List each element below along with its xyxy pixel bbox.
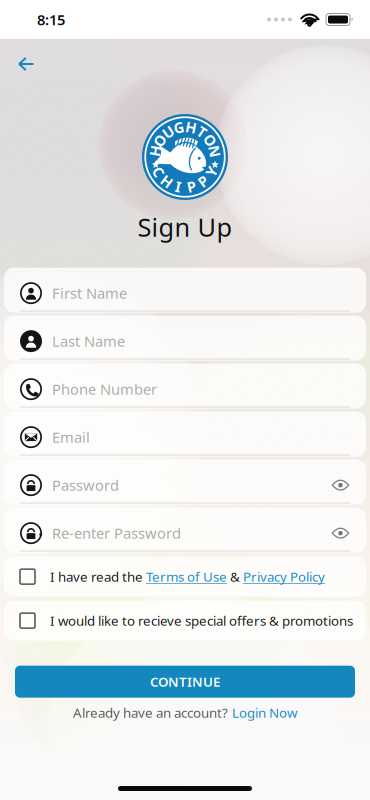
staticText: O [154, 130, 166, 150]
staticText: C [154, 162, 163, 181]
staticText: Password [52, 475, 119, 495]
staticText: G [174, 118, 185, 137]
staticText: P [199, 172, 208, 191]
staticText: Login Now [232, 704, 297, 721]
staticText: Phone Number [52, 379, 157, 399]
staticText: Re-enter Password [52, 523, 181, 543]
staticText: I have read the [50, 568, 146, 585]
staticText: Y [207, 162, 216, 181]
staticText: First Name [52, 283, 127, 303]
staticText: H [150, 141, 161, 161]
button[interactable]: I have read the [4, 557, 366, 597]
button[interactable]: I would like to recieve special offers &… [4, 601, 366, 641]
staticText: U [163, 122, 174, 142]
staticText: H [161, 172, 172, 191]
staticText: CONTINUE [150, 673, 220, 690]
staticText: Last Name [52, 331, 125, 351]
staticText: I would like to recieve special offers &… [50, 612, 353, 629]
staticText: H [185, 118, 196, 137]
button[interactable]: Back [7, 43, 45, 85]
staticText: 8:15 [37, 10, 65, 29]
staticText: & [227, 568, 243, 585]
button[interactable]: CONTINUE [15, 666, 355, 698]
staticText: Sign Up [137, 210, 232, 244]
button[interactable]: Login Now [232, 704, 297, 721]
staticText: Terms of Use [146, 568, 227, 585]
staticText: I [175, 177, 181, 196]
button[interactable]: Show password [329, 525, 352, 541]
staticText: Email [52, 427, 90, 447]
staticText: P [187, 177, 196, 196]
staticText: T [198, 122, 206, 142]
button[interactable]: Show password [329, 477, 352, 493]
staticText: O [204, 130, 216, 150]
staticText: Already have an account? [73, 704, 228, 721]
staticText: Privacy Policy [243, 568, 325, 585]
staticText: N [209, 141, 221, 161]
